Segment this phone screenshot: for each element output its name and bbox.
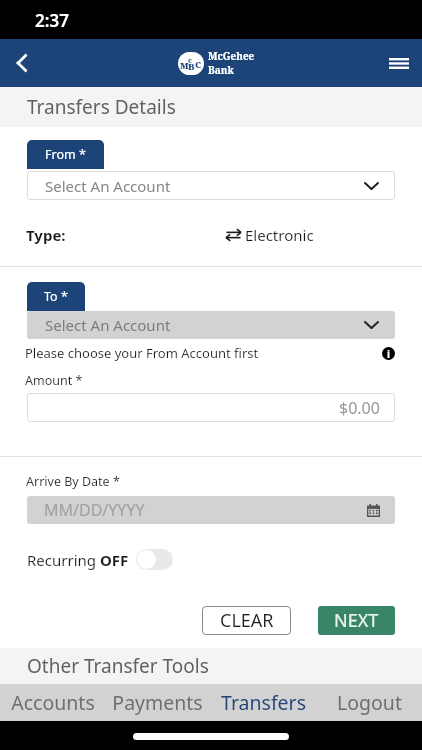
staticText: Other Transfer Tools xyxy=(27,653,209,679)
staticText: Electronic xyxy=(245,225,314,245)
staticText: B xyxy=(188,60,195,72)
button[interactable]: Menu xyxy=(375,40,422,87)
staticText: OFF xyxy=(100,550,129,570)
staticText: c xyxy=(188,56,192,66)
staticText: McGehee xyxy=(208,49,255,63)
staticText: Please choose your From Account first xyxy=(25,344,259,362)
staticText: Arrive By Date * xyxy=(26,473,120,490)
button[interactable]: Logout xyxy=(316,684,422,721)
button[interactable]: Transfers xyxy=(210,684,316,721)
staticText: Type: xyxy=(26,225,66,245)
button[interactable]: MM/DD/YYYY xyxy=(27,496,395,524)
staticText: NEXT xyxy=(334,608,379,633)
staticText: Bank xyxy=(208,63,234,77)
button[interactable]: Accounts xyxy=(0,684,105,721)
staticText: Transfers xyxy=(221,689,306,716)
staticText: C xyxy=(195,58,202,70)
button[interactable]: Select An Account xyxy=(27,171,395,200)
staticText: Accounts xyxy=(11,689,95,716)
staticText: Select An Account xyxy=(45,315,171,335)
button[interactable]: CLEAR xyxy=(202,606,291,635)
staticText: Select An Account xyxy=(45,176,171,196)
button[interactable]: Payments xyxy=(105,684,210,721)
staticText: i xyxy=(387,347,390,360)
staticText: Transfers Details xyxy=(27,94,176,120)
button[interactable]: NEXT xyxy=(318,606,395,635)
button[interactable]: Recurring xyxy=(27,549,173,570)
staticText: 2:37 xyxy=(35,9,69,32)
button[interactable]: Back xyxy=(0,41,44,85)
staticText: Logout xyxy=(337,689,402,716)
staticText: Amount * xyxy=(25,372,83,389)
staticText: Recurring xyxy=(27,550,100,570)
button[interactable]: To * xyxy=(27,282,85,311)
staticText: $0.00 xyxy=(339,397,380,419)
staticText: CLEAR xyxy=(220,608,274,633)
staticText: M xyxy=(180,59,189,71)
staticText: To * xyxy=(44,288,68,305)
staticText: MM/DD/YYYY xyxy=(44,499,145,521)
button[interactable]: Select An Account xyxy=(27,311,395,339)
staticText: From * xyxy=(45,146,86,163)
button[interactable]: From * xyxy=(27,140,104,169)
staticText: Payments xyxy=(112,689,203,716)
button[interactable]: $0.00 xyxy=(27,393,395,422)
